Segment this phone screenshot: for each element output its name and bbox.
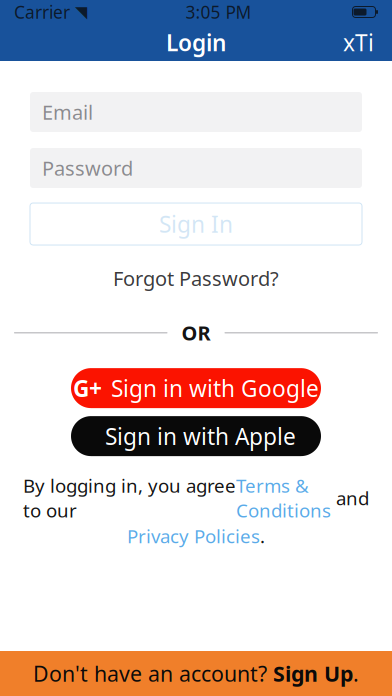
button[interactable]: Sign In [30, 203, 362, 245]
staticText: 3:05 PM [185, 0, 251, 23]
staticText: Sign in with Google [111, 373, 319, 403]
staticText: xTi [343, 27, 374, 57]
staticText: Sign In [159, 209, 233, 239]
staticText: OR [181, 320, 210, 346]
staticText: . [353, 659, 359, 688]
staticText: Forgot Password? [113, 265, 279, 292]
staticText: . [260, 524, 265, 548]
staticText: and [331, 485, 369, 510]
staticText: Privacy Policies [127, 524, 260, 548]
staticText: Sign Up [273, 659, 353, 688]
staticText: G+ [73, 373, 102, 403]
button[interactable]: xTi [333, 21, 384, 63]
button[interactable]: Don't have an account? [0, 651, 392, 696]
button[interactable]: Terms & Conditions [236, 473, 331, 523]
staticText: Sign in with Apple [105, 421, 296, 451]
staticText: By logging in, you agree to our [23, 473, 236, 523]
staticText: ◥ [75, 3, 87, 21]
button[interactable]: Password [30, 148, 362, 188]
staticText: Email [42, 99, 93, 125]
button[interactable]: Email [30, 92, 362, 132]
staticText: Don't have an account? [33, 659, 273, 688]
staticText: Login [166, 27, 226, 57]
button[interactable]: Privacy Policies [127, 524, 260, 548]
button[interactable] [71, 416, 321, 456]
staticText: Terms & Conditions [236, 473, 331, 523]
button[interactable]: G+ [71, 368, 321, 408]
staticText: Password [42, 155, 133, 181]
button[interactable]: Forgot Password? [101, 259, 291, 298]
staticText: Carrier [14, 0, 70, 23]
